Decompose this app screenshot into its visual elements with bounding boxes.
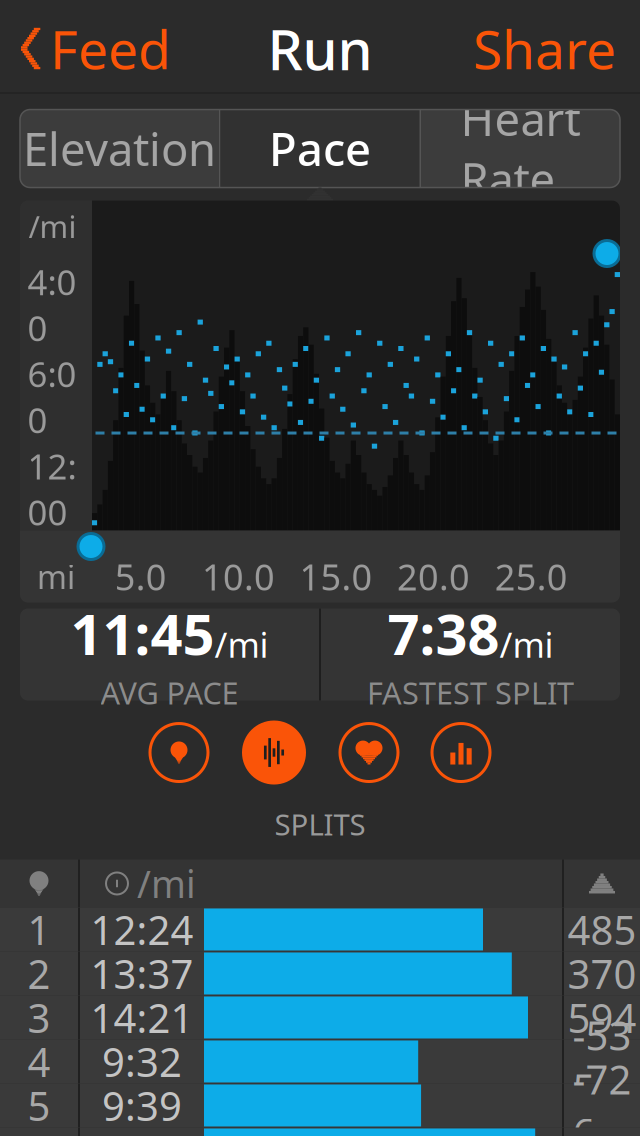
button[interactable]: Heart Rate bbox=[421, 109, 620, 187]
staticText: /mi bbox=[28, 206, 76, 247]
button[interactable]: 1 bbox=[0, 907, 640, 951]
staticText: 9:32 bbox=[102, 1035, 182, 1088]
staticText: 5.0 bbox=[115, 553, 167, 600]
button[interactable]: Heart Rate bbox=[338, 721, 400, 783]
button[interactable]: 4 bbox=[0, 1039, 640, 1083]
staticText: 370 bbox=[567, 947, 636, 1000]
button[interactable]: Share bbox=[455, 5, 634, 92]
button[interactable]: 5 bbox=[0, 1083, 640, 1127]
staticText: 3 bbox=[27, 991, 50, 1044]
button[interactable]: Pace bbox=[240, 718, 308, 786]
staticText: Elevation bbox=[23, 118, 216, 179]
staticText: 10.0 bbox=[202, 553, 275, 600]
staticText: 4 bbox=[27, 1035, 50, 1088]
staticText: 9:39 bbox=[102, 1079, 182, 1132]
button[interactable]: 2 bbox=[0, 951, 640, 995]
staticText: 4:00 bbox=[27, 259, 76, 351]
staticText: 20.0 bbox=[397, 553, 470, 600]
staticText: 13:37 bbox=[90, 947, 193, 1000]
staticText: Run bbox=[267, 11, 372, 86]
staticText: FASTEST SPLIT bbox=[367, 672, 574, 713]
staticText: 2 bbox=[27, 947, 50, 1000]
button[interactable]: 6 bbox=[0, 1127, 640, 1136]
staticText: 14:21 bbox=[90, 991, 193, 1044]
staticText: mi bbox=[37, 555, 75, 598]
button[interactable]: 3 bbox=[0, 995, 640, 1039]
staticText: 12:24 bbox=[90, 903, 193, 956]
button[interactable]: Splits bbox=[430, 721, 492, 783]
staticText: 11:45 bbox=[70, 596, 214, 670]
staticText: 485 bbox=[567, 903, 636, 956]
staticText: 7:38 bbox=[387, 596, 499, 670]
staticText: 15.0 bbox=[299, 553, 372, 600]
staticText: 5 bbox=[27, 1079, 50, 1132]
button[interactable]: Map bbox=[148, 721, 210, 783]
staticText: Feed bbox=[50, 13, 171, 84]
staticText: Pace bbox=[269, 118, 371, 179]
button[interactable]: Elevation bbox=[20, 109, 219, 187]
staticText: Share bbox=[473, 13, 616, 84]
staticText: -535 bbox=[572, 1008, 631, 1115]
staticText: 490 bbox=[567, 1123, 636, 1136]
staticText: 12:00 bbox=[27, 443, 76, 535]
staticText: SPLITS bbox=[274, 804, 365, 843]
staticText: 25.0 bbox=[495, 553, 568, 600]
staticText: AVG PACE bbox=[100, 672, 238, 713]
staticText: 594 bbox=[567, 991, 636, 1044]
button[interactable]: Pace bbox=[220, 109, 419, 187]
staticText: /mi bbox=[499, 621, 553, 667]
staticText: -726 bbox=[572, 1052, 631, 1136]
staticText: /mi bbox=[137, 859, 196, 908]
staticText: 6:00 bbox=[27, 351, 76, 443]
staticText: 1 bbox=[27, 903, 50, 956]
button[interactable]: Feed bbox=[6, 5, 185, 92]
staticText: Heart Rate bbox=[460, 88, 580, 209]
staticText: /mi bbox=[214, 621, 268, 667]
